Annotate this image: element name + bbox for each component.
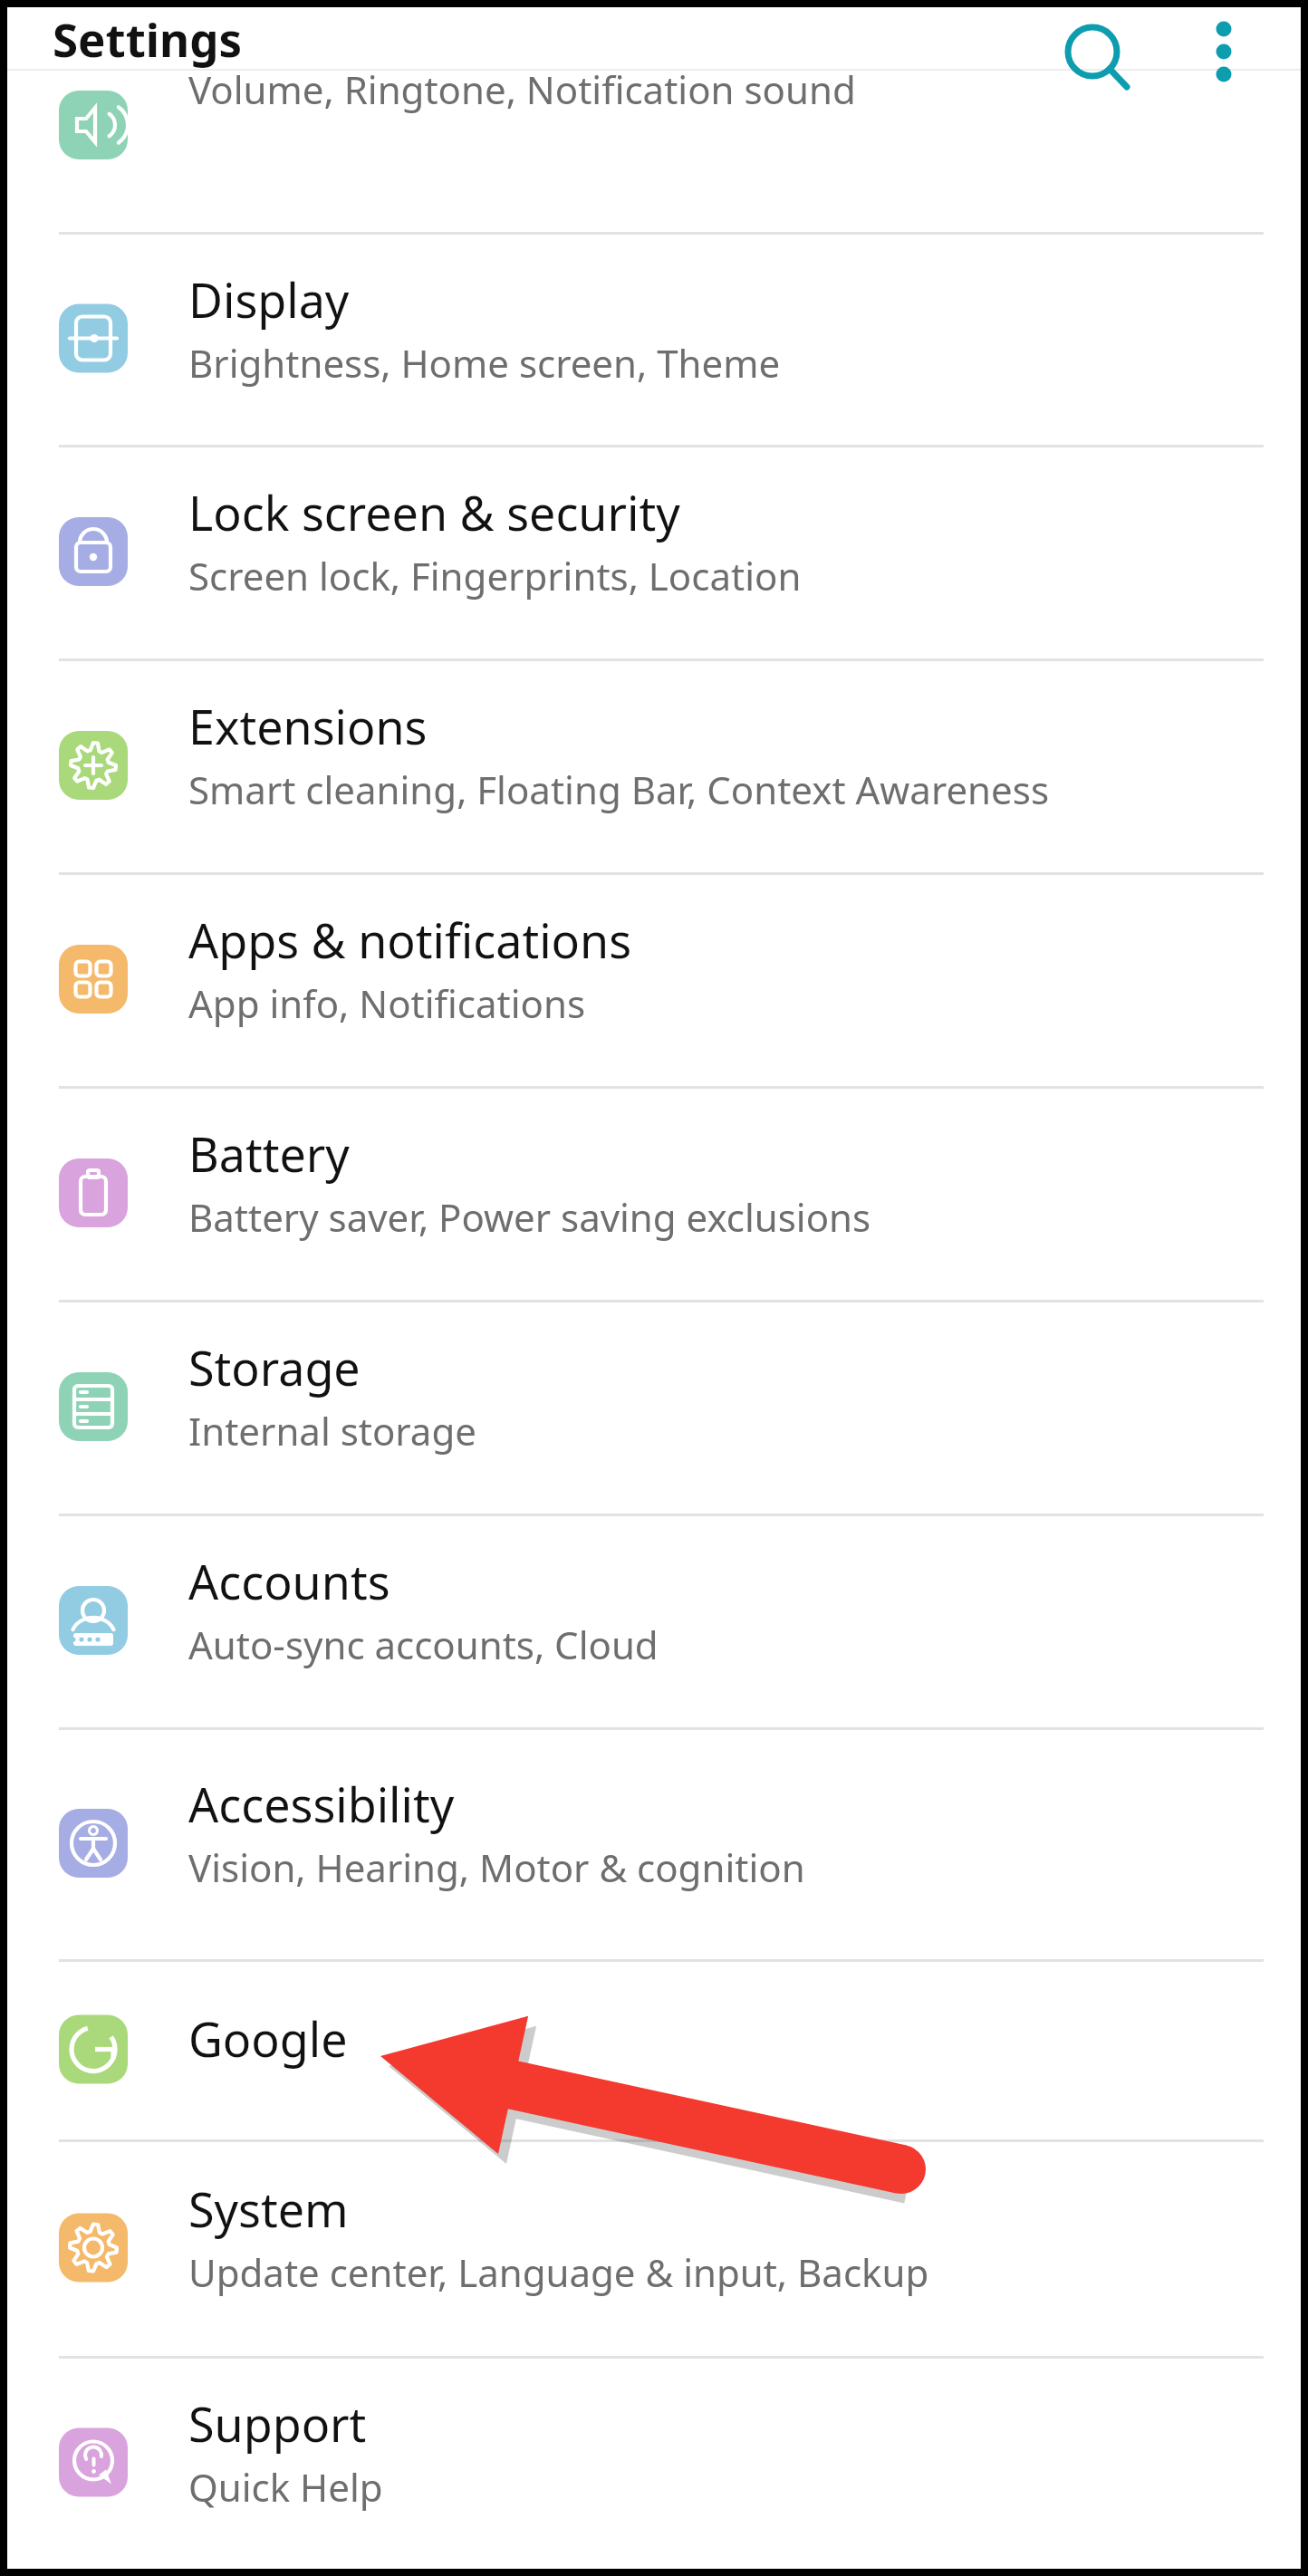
staticText: Smart cleaning, Floating Bar, Context Aw… — [188, 764, 1049, 815]
button[interactable]: Display — [7, 221, 1301, 434]
staticText: Brightness, Home screen, Theme — [188, 337, 781, 389]
staticText: Quick Help — [188, 2461, 383, 2513]
button[interactable]: More options — [1161, 7, 1248, 69]
staticText: Accounts — [188, 1549, 390, 1613]
staticText: Auto-sync accounts, Cloud — [188, 1619, 659, 1670]
staticText: Storage — [188, 1335, 361, 1399]
staticText: Internal storage — [188, 1405, 476, 1456]
button[interactable]: Accounts — [7, 1503, 1301, 1716]
staticText: Display — [188, 267, 350, 332]
button[interactable]: Lock screen & security — [7, 434, 1301, 648]
button[interactable]: Battery — [7, 1075, 1301, 1289]
staticText: Vision, Hearing, Motor & cognition — [188, 1841, 805, 1893]
staticText: Volume, Ringtone, Notification sound — [188, 63, 856, 115]
button[interactable]: Volume, Ringtone, Notification sound — [7, 7, 1301, 221]
staticText: Apps & notifications — [188, 908, 632, 972]
button[interactable]: Accessibility — [7, 1716, 1301, 1948]
button[interactable]: Search — [1042, 7, 1129, 69]
button[interactable]: Extensions — [7, 648, 1301, 861]
button[interactable]: Google — [7, 1948, 1301, 2129]
staticText: Extensions — [188, 694, 428, 758]
button[interactable]: System — [7, 2129, 1301, 2345]
staticText: App info, Notifications — [188, 977, 586, 1029]
staticText: Battery — [188, 1121, 350, 1186]
button[interactable]: Apps & notifications — [7, 861, 1301, 1075]
staticText: Support — [188, 2391, 367, 2456]
staticText: Google — [188, 2006, 348, 2071]
staticText: Update center, Language & input, Backup — [188, 2246, 929, 2298]
staticText: System — [188, 2177, 349, 2241]
staticText: Battery saver, Power saving exclusions — [188, 1191, 871, 1243]
button[interactable]: Support — [7, 2345, 1301, 2558]
staticText: Settings — [53, 7, 243, 69]
staticText: Accessibility — [188, 1772, 455, 1836]
staticText: Lock screen & security — [188, 480, 680, 544]
staticText: Screen lock, Fingerprints, Location — [188, 550, 802, 601]
button[interactable]: Storage — [7, 1289, 1301, 1503]
